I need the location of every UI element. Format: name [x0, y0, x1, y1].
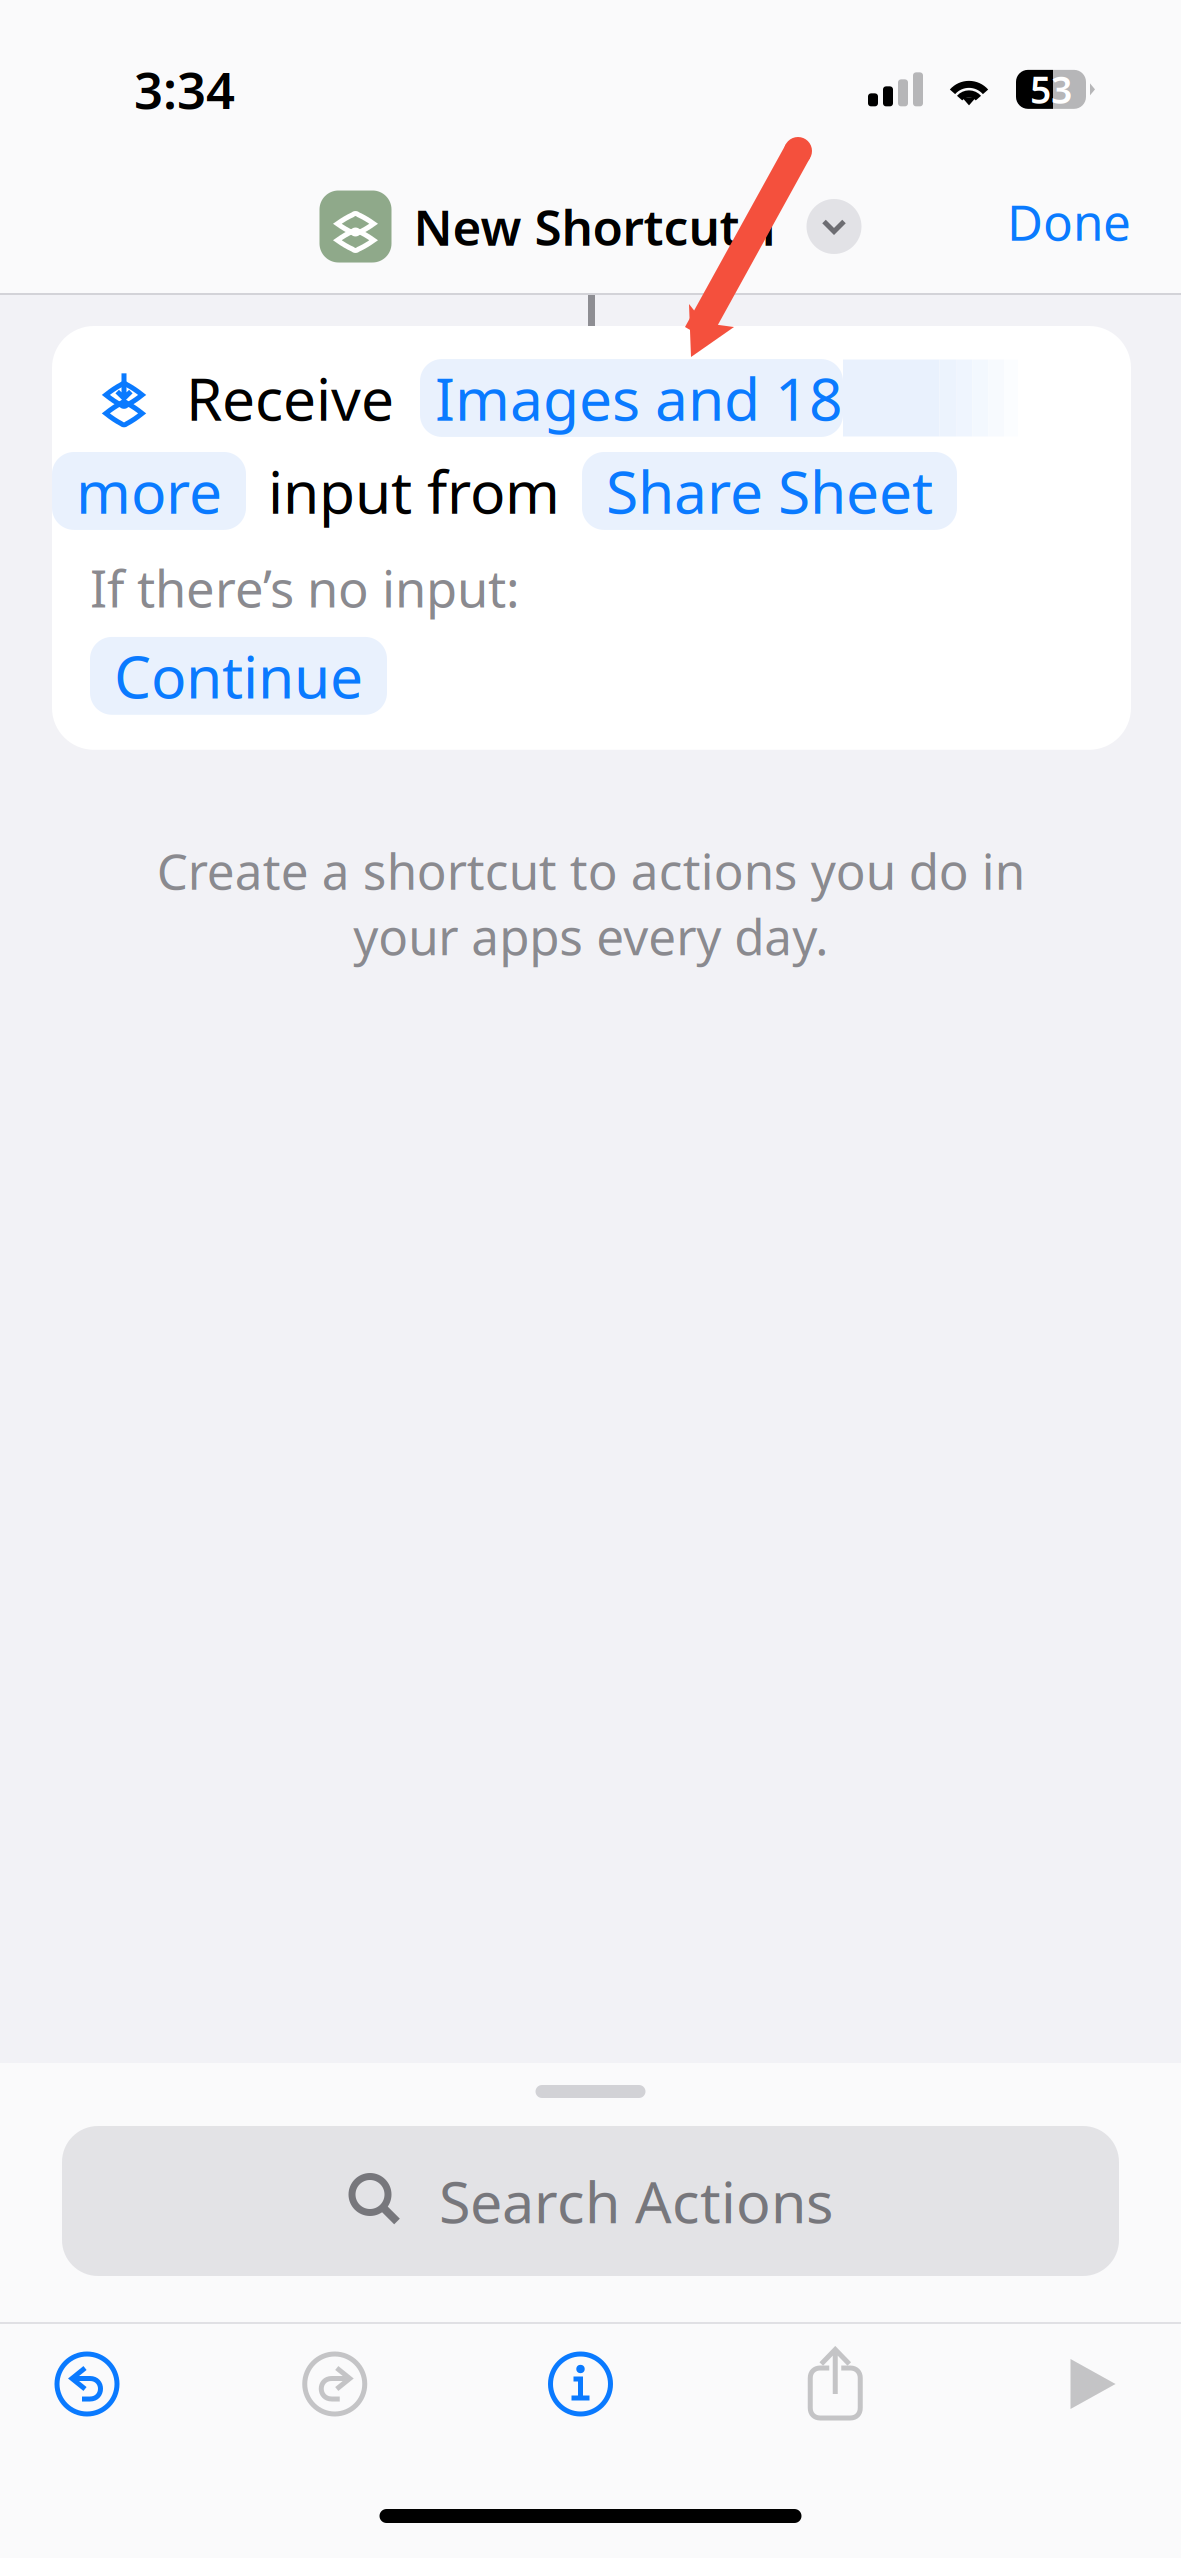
button[interactable]: Search Actions	[0, 2098, 1181, 2276]
staticText: more	[76, 452, 222, 530]
button[interactable]: Share	[739, 2324, 931, 2444]
staticText: 3:34	[134, 56, 235, 123]
staticText: Continue	[114, 637, 363, 715]
button[interactable]: Undo	[0, 2324, 174, 2444]
staticText: Done	[1007, 189, 1131, 254]
staticText: Share Sheet	[606, 452, 933, 530]
button[interactable]: Run	[1005, 2324, 1181, 2444]
button[interactable]: New Shortcut 1	[319, 180, 861, 262]
staticText: Images and 18	[435, 359, 843, 437]
staticText: Create a shortcut to actions you do in y…	[156, 838, 1024, 969]
button[interactable]: Redo	[248, 2324, 422, 2444]
staticText: New Shortcut 1	[413, 194, 780, 259]
staticText: 53	[1030, 65, 1072, 114]
button[interactable]: Done	[967, 163, 1181, 280]
staticText: Receive	[186, 359, 394, 437]
button[interactable]: Details	[495, 2324, 665, 2444]
staticText: Search Actions	[439, 2163, 833, 2239]
staticText: input from	[268, 452, 560, 530]
staticText: If there’s no input:	[90, 554, 520, 622]
